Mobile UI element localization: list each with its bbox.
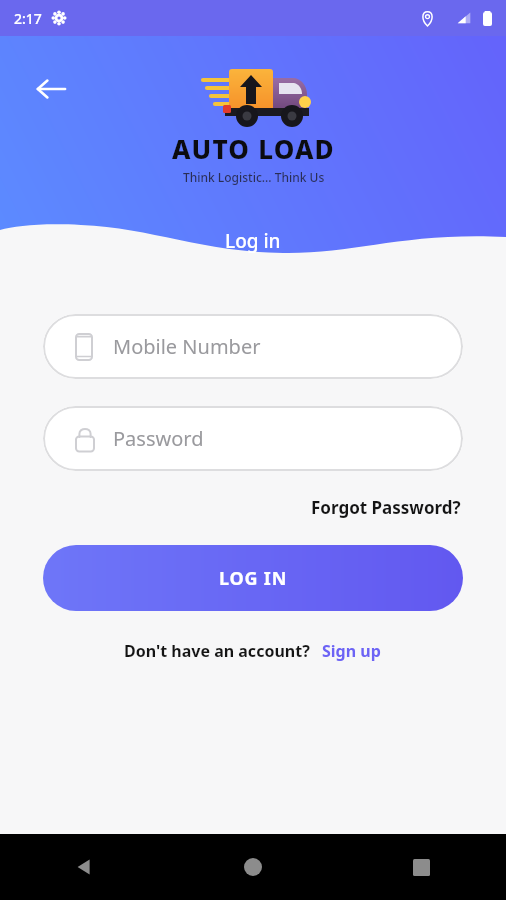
button[interactable]: Password	[43, 406, 463, 471]
button[interactable]: Home	[168, 834, 337, 900]
staticText: Mobile Number	[113, 333, 261, 360]
staticText: 2:17	[14, 9, 42, 28]
button[interactable]: Sign up	[320, 636, 383, 666]
button[interactable]: Back	[0, 834, 168, 900]
staticText: Log in	[225, 228, 281, 254]
staticText: Think Logistic... Think Us	[183, 169, 325, 185]
button[interactable]: Recent apps	[337, 834, 506, 900]
staticText: Sign up	[322, 640, 381, 662]
staticText: Don't have an account?	[124, 640, 310, 662]
staticText: Forgot Password?	[311, 496, 461, 519]
staticText: Password	[113, 425, 204, 452]
staticText: LOG IN	[219, 566, 288, 591]
button[interactable]: Mobile Number	[43, 314, 463, 379]
button[interactable]: Back	[28, 66, 74, 112]
staticText: AUTO LOAD	[172, 131, 335, 166]
button[interactable]: LOG IN	[43, 545, 463, 611]
button[interactable]: Forgot Password?	[309, 492, 463, 523]
